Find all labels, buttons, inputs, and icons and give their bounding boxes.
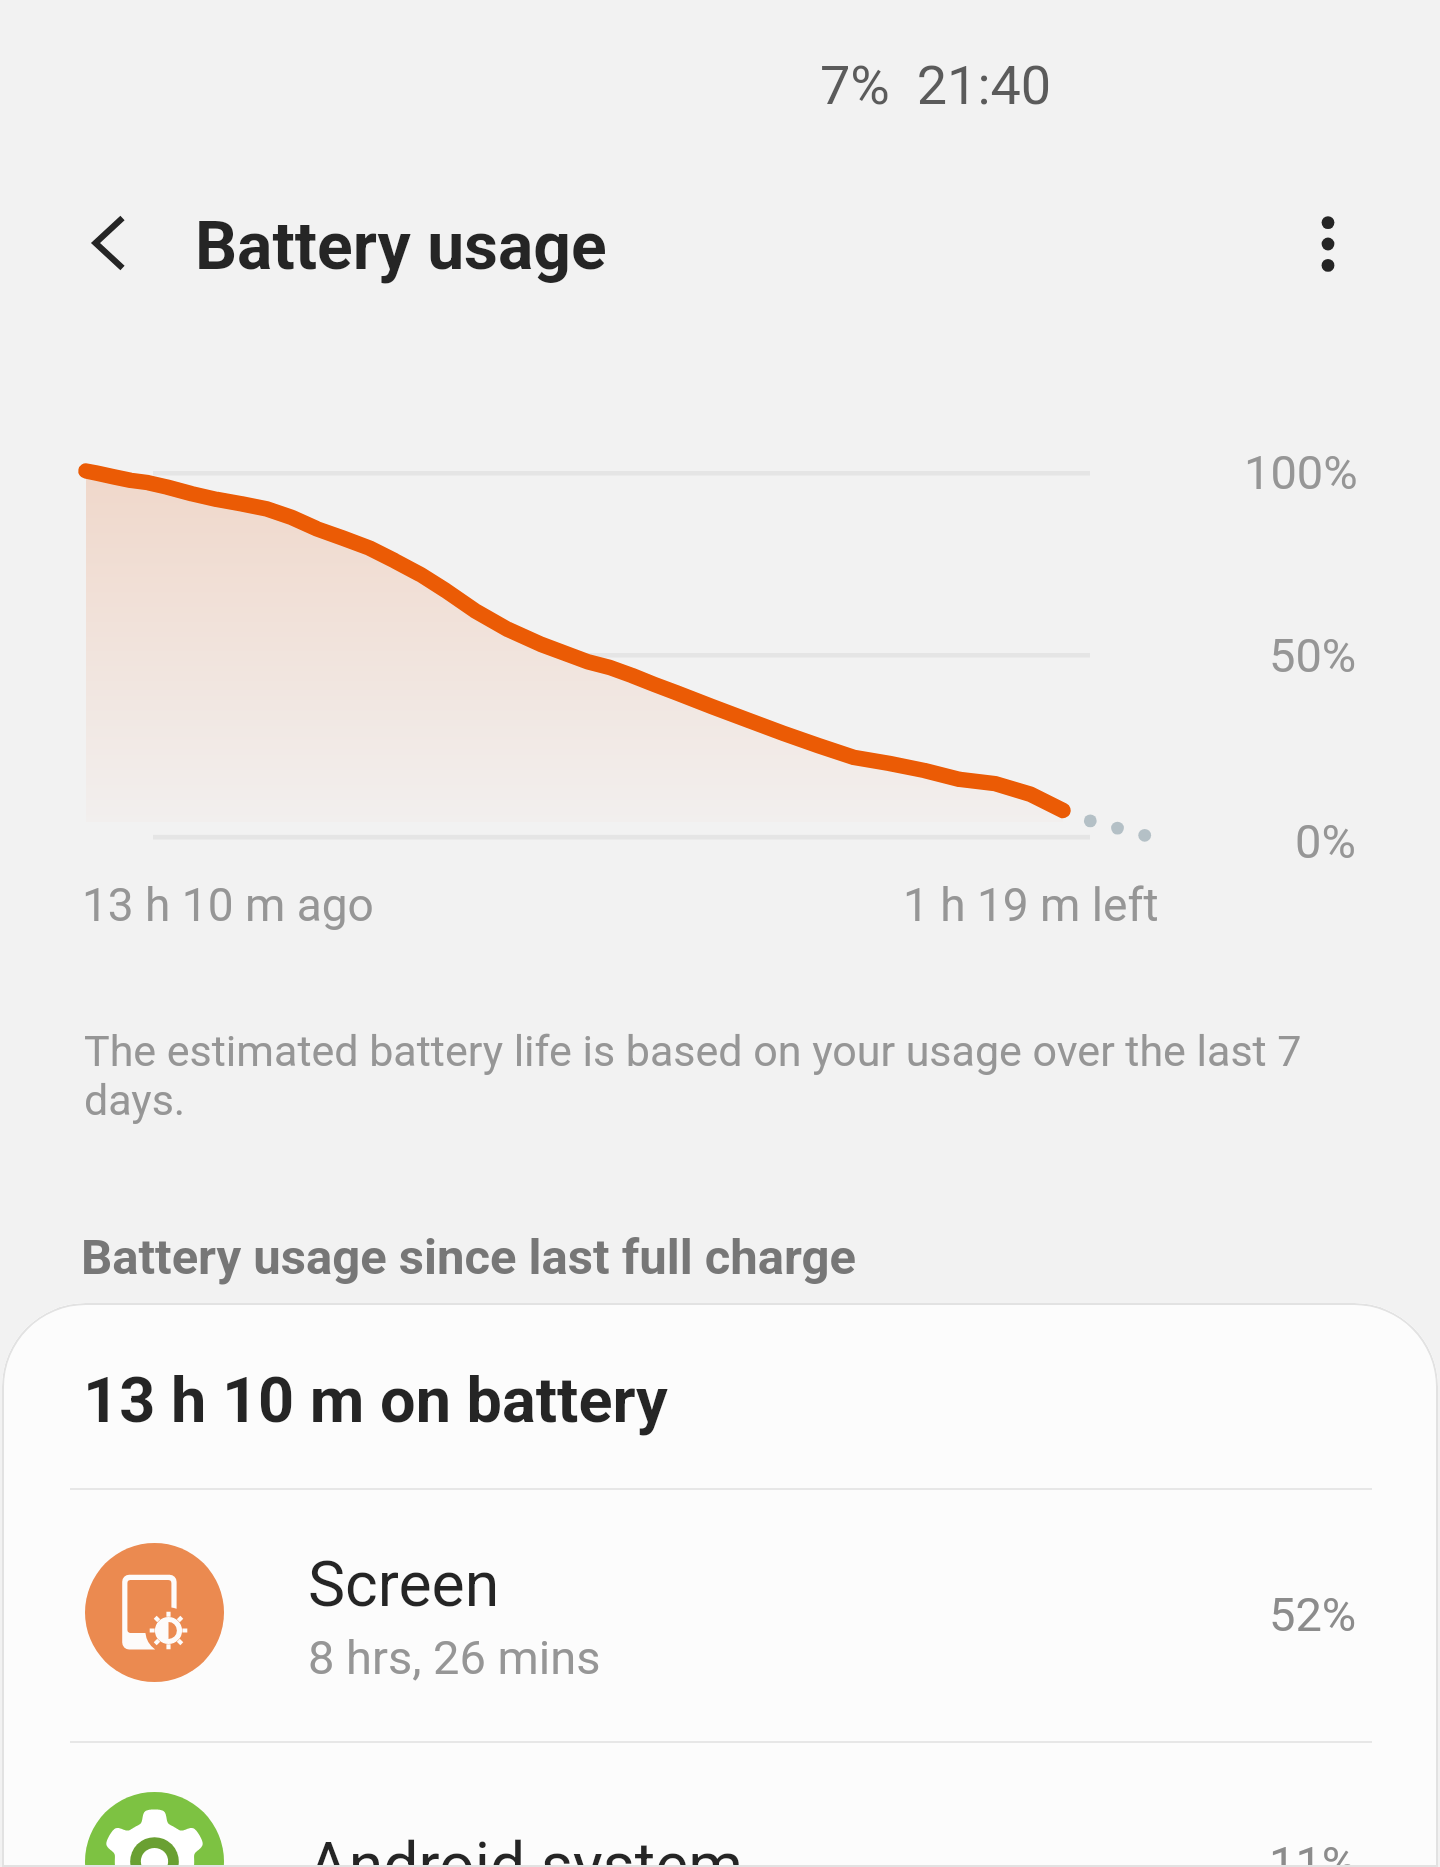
staticText: 13 h 10 m ago: [82, 878, 374, 932]
staticText: Screen: [308, 1548, 500, 1621]
staticText: 100%: [1244, 445, 1358, 500]
staticText: 13 h 10 m on battery: [83, 1364, 668, 1438]
staticText: Battery usage since last full charge: [81, 1229, 856, 1286]
staticText: 8 hrs, 26 mins: [308, 1630, 601, 1685]
staticText: The estimated battery life is based on y…: [84, 1026, 1329, 1125]
staticText: Android system: [308, 1829, 744, 1867]
staticText: 7% 21:40: [820, 54, 1052, 117]
button[interactable]: Screen: [2, 1486, 1438, 1739]
staticText: 50%: [1269, 628, 1357, 683]
staticText: 11%: [1269, 1836, 1357, 1867]
staticText: 0%: [1295, 814, 1356, 869]
staticText: 52%: [1269, 1587, 1357, 1642]
staticText: 1 h 19 m left: [903, 878, 1159, 932]
staticText: Battery usage: [195, 208, 607, 285]
button[interactable]: Android system: [2, 1739, 1438, 1867]
button[interactable]: Navigate up: [54, 188, 166, 300]
button[interactable]: More options: [1273, 189, 1383, 299]
